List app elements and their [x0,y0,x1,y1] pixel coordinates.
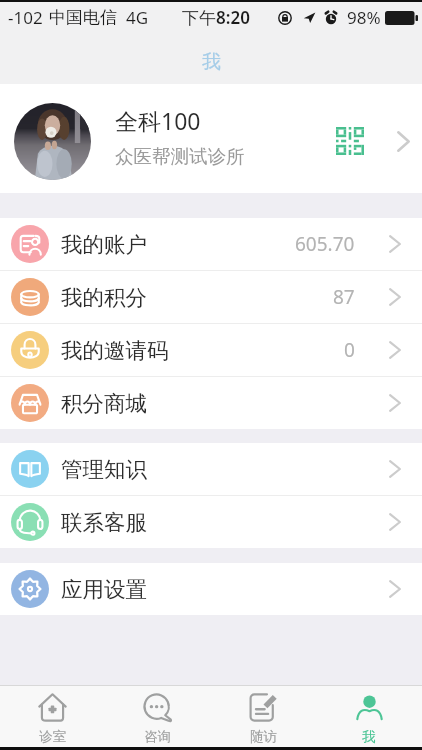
staticText: 众医帮测试诊所 [115,145,245,168]
staticText: 98% [347,6,381,29]
staticText: 应用设置 [61,576,147,603]
staticText: 605.70 [295,231,355,257]
button[interactable]: 我的邀请码 [0,324,422,376]
button[interactable]: 应用设置 [0,563,422,615]
button[interactable]: 联系客服 [0,496,422,548]
button[interactable]: 咨询 [105,693,210,745]
button[interactable]: 诊室 [0,693,105,745]
button[interactable]: 我的账户 [0,218,422,270]
button[interactable]: 随访 [210,693,316,745]
staticText: 随访 [250,728,277,745]
staticText: 我的积分 [61,284,147,311]
staticText: 我的账户 [61,231,147,258]
staticText: 下午8:20 [182,6,250,29]
button[interactable]: 全科100 [0,84,422,193]
staticText: -102 [8,6,43,29]
staticText: 我 [362,728,376,745]
staticText: 87 [333,284,355,310]
staticText: 4G [126,6,149,29]
staticText: 诊室 [39,728,66,745]
staticText: 管理知识 [61,456,147,483]
button[interactable]: 我的积分 [0,271,422,323]
staticText: 我的邀请码 [61,337,169,364]
button[interactable]: 积分商城 [0,377,422,429]
staticText: 积分商城 [61,390,147,417]
staticText: 全科100 [115,105,201,136]
staticText: 联系客服 [61,509,147,536]
button[interactable]: 管理知识 [0,443,422,495]
staticText: 我 [202,50,221,74]
staticText: 中国电信 [49,7,117,28]
button[interactable]: 我 [316,693,422,745]
button[interactable]: Scan QR code [336,127,364,155]
staticText: 0 [344,337,355,363]
staticText: 咨询 [144,728,171,745]
